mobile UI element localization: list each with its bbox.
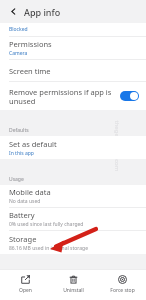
- staticText: Remove permissions if app is unused: [9, 87, 116, 106]
- staticText: Camera: [9, 50, 28, 57]
- staticText: 86.16 MB used in internal storage: [9, 245, 88, 252]
- staticText: 0% used since last fully charged: [9, 221, 84, 228]
- staticText: Open: [19, 287, 32, 294]
- staticText: Defaults: [9, 127, 29, 134]
- button[interactable]: Permissions: [0, 37, 146, 59]
- staticText: Force stop: [110, 287, 135, 294]
- button[interactable]: Uninstall: [49, 269, 97, 300]
- staticText: No data used: [9, 198, 41, 205]
- staticText: In this app: [9, 150, 34, 157]
- staticText: App info: [24, 6, 61, 18]
- staticText: Mobile data: [9, 187, 51, 197]
- staticText: Blocked: [9, 26, 28, 33]
- button[interactable]: Open: [1, 269, 49, 300]
- button[interactable]: Battery: [0, 208, 146, 230]
- button[interactable]: Force stop: [98, 269, 146, 300]
- staticText: Screen time: [9, 66, 51, 76]
- staticText: Uninstall: [63, 287, 84, 294]
- button[interactable]: Back: [7, 5, 20, 18]
- staticText: Storage: [9, 234, 37, 244]
- button[interactable]: Set as default: [0, 136, 146, 159]
- staticText: Permissions: [9, 39, 52, 49]
- button[interactable]: Remove permissions if app is unused: [0, 82, 146, 110]
- staticText: thegeekpage.com: [112, 120, 120, 171]
- button[interactable]: Screen time: [0, 60, 146, 81]
- button[interactable]: Blocked: [0, 23, 146, 36]
- staticText: Usage: [9, 176, 24, 183]
- button[interactable]: Mobile data: [0, 185, 146, 207]
- staticText: Set as default: [9, 139, 57, 149]
- staticText: Battery: [9, 210, 35, 220]
- button[interactable]: Remove permissions toggle: [120, 91, 139, 101]
- button[interactable]: Storage: [0, 231, 146, 254]
